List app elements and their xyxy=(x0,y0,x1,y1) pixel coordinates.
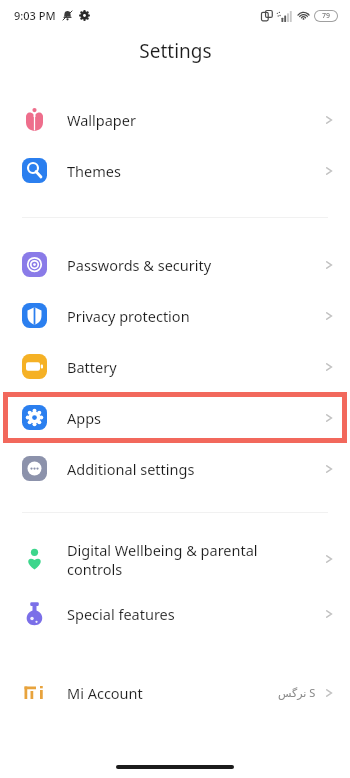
staticText: 79 xyxy=(322,11,331,21)
staticText: نرگس S xyxy=(278,685,316,700)
button[interactable]: Special features xyxy=(0,588,350,639)
button[interactable]: Passwords & security xyxy=(0,239,350,290)
staticText: Apps xyxy=(67,408,325,428)
button[interactable]: Additional settings xyxy=(0,443,350,494)
staticText: Themes xyxy=(67,161,325,181)
staticText: Privacy protection xyxy=(67,306,325,326)
staticText: Digital Wellbeing & parental controls xyxy=(67,540,325,579)
button[interactable]: Battery xyxy=(0,341,350,392)
staticText: 9:03 PM xyxy=(14,8,56,23)
staticText: Wallpaper xyxy=(67,110,325,130)
button[interactable]: Privacy protection xyxy=(0,290,350,341)
staticText: Settings xyxy=(139,38,212,64)
staticText: Additional settings xyxy=(67,459,325,479)
button[interactable]: Apps xyxy=(0,392,350,443)
staticText: Battery xyxy=(67,357,325,377)
staticText: Passwords & security xyxy=(67,255,325,275)
staticText: Special features xyxy=(67,604,325,624)
button[interactable]: Themes xyxy=(0,145,350,196)
staticText: Mi Account xyxy=(67,683,278,703)
button[interactable]: Mi Account xyxy=(0,667,350,718)
button[interactable]: Digital Wellbeing & parental controls xyxy=(0,530,350,588)
button[interactable]: Wallpaper xyxy=(0,94,350,145)
